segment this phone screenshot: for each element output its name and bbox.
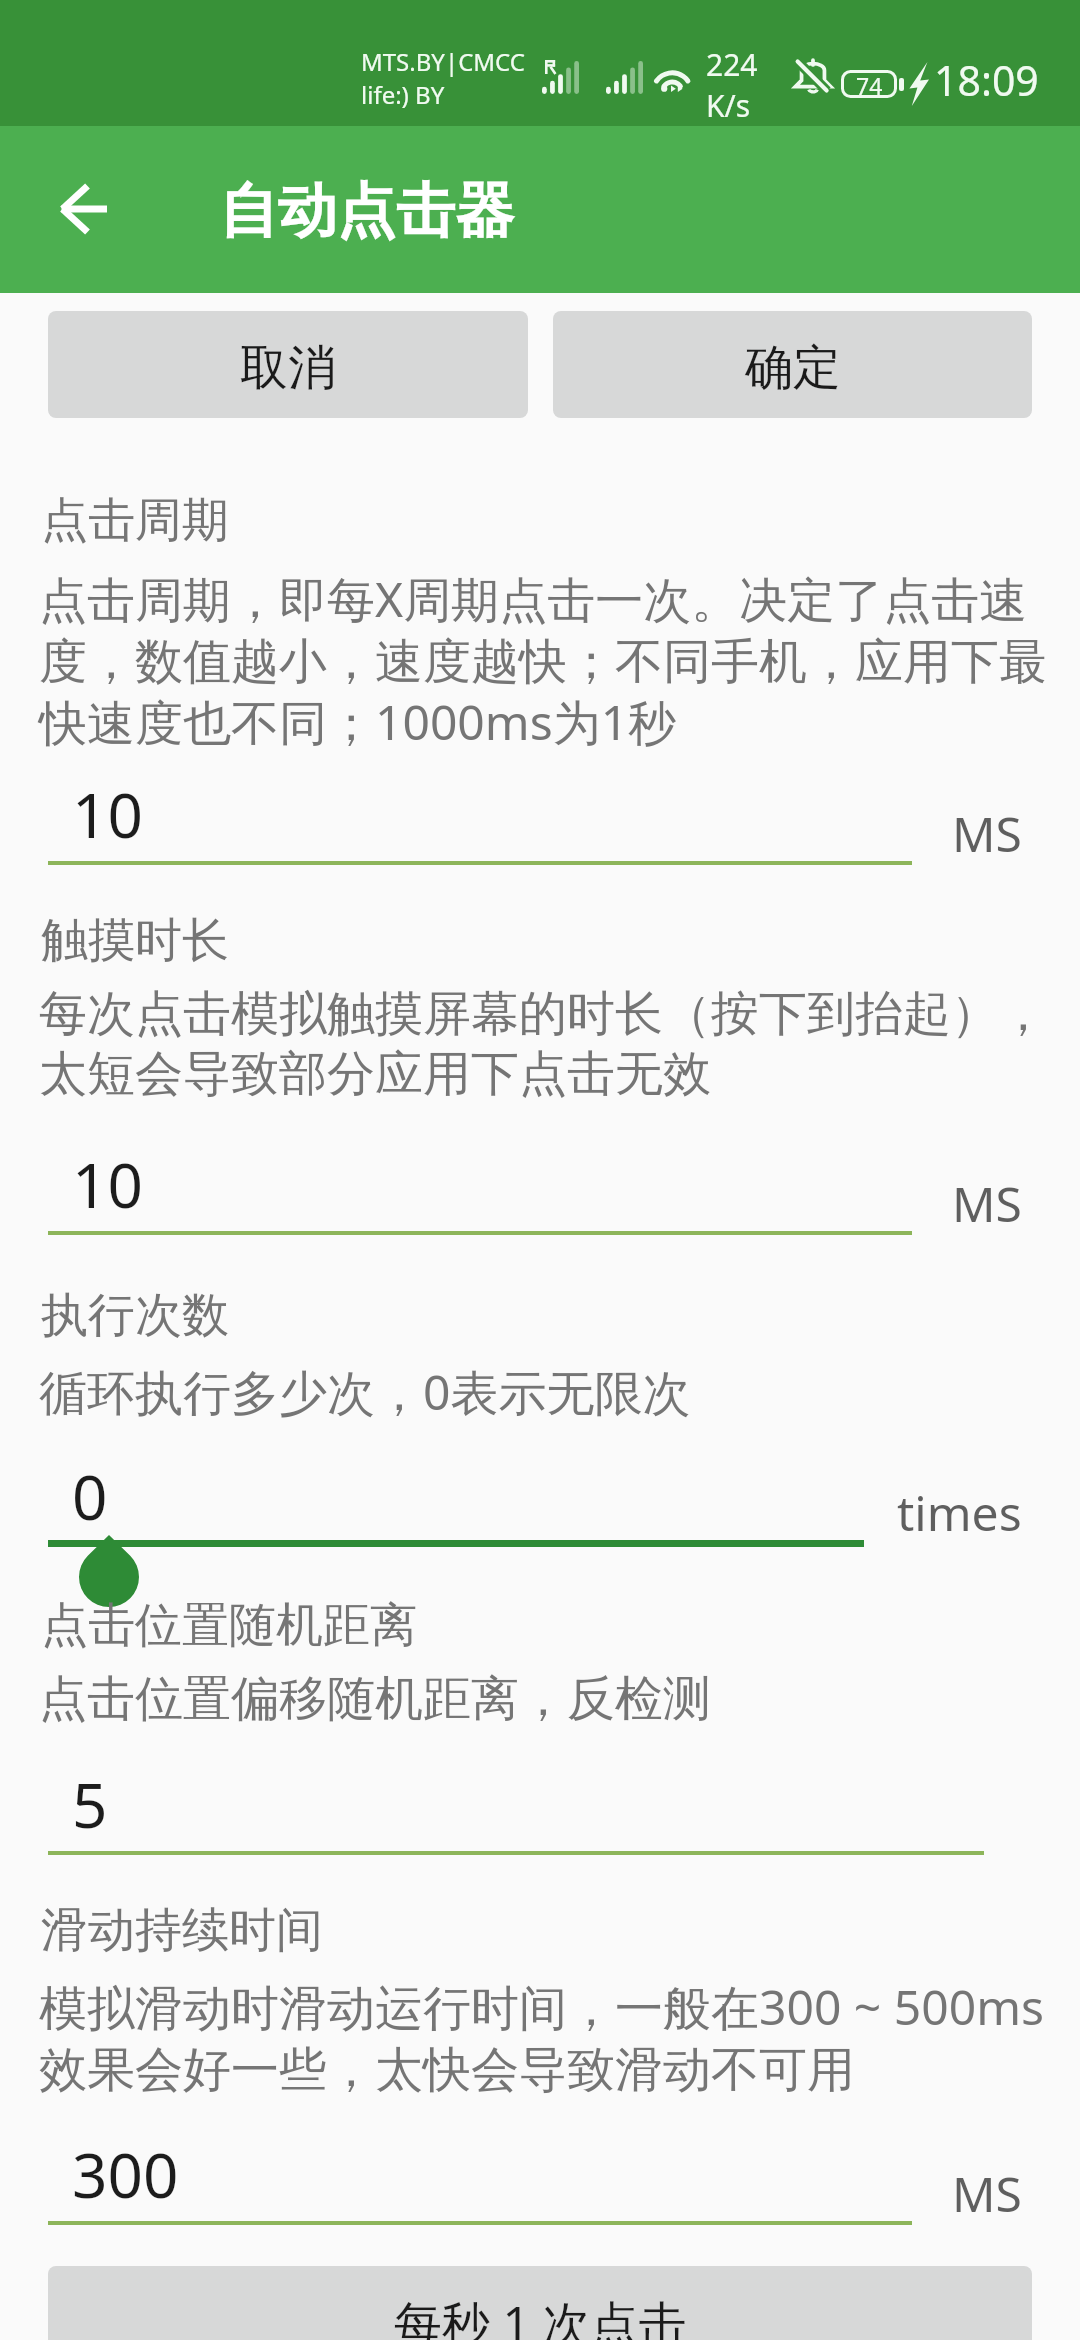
staticText: 点击周期，即每X周期点击一次。决定了点击速 度，数值越小，速度越快；不同手机，应… bbox=[39, 566, 1047, 754]
staticText: 18:09 bbox=[934, 52, 1039, 108]
staticText: 每次点击模拟触摸屏幕的时长（按下到抬起）， 太短会导致部分应用下点击无效 bbox=[39, 984, 1047, 1104]
staticText: times bbox=[897, 1480, 1022, 1545]
staticText: 10 bbox=[72, 772, 143, 856]
staticText: 点击位置随机距离 bbox=[41, 1596, 417, 1655]
staticText: 5 bbox=[72, 1762, 108, 1846]
staticText: 确定 bbox=[745, 338, 841, 398]
staticText: 每秒 1 次点击 bbox=[394, 2290, 687, 2340]
button[interactable]: 10 bbox=[48, 1130, 912, 1235]
button[interactable]: Back bbox=[32, 157, 136, 261]
staticText: 点击位置偏移随机距离，反检测 bbox=[39, 1669, 711, 1729]
button[interactable]: 取消 bbox=[48, 311, 528, 418]
staticText: 模拟滑动时滑动运行时间，一般在300 ~ 500ms 效果会好一些，太快会导致滑… bbox=[39, 1974, 1045, 2100]
button[interactable]: 10 bbox=[48, 760, 912, 865]
staticText: 取消 bbox=[240, 338, 336, 398]
staticText: 10 bbox=[72, 1142, 143, 1226]
staticText: 自动点击器 bbox=[219, 174, 514, 248]
staticText: MS bbox=[952, 2161, 1022, 2226]
staticText: 300 bbox=[72, 2132, 179, 2216]
staticText: 触摸时长 bbox=[41, 911, 229, 970]
staticText: 224 bbox=[706, 44, 758, 85]
staticText: 循环执行多少次，0表示无限次 bbox=[39, 1359, 691, 1425]
staticText: 74 bbox=[856, 70, 883, 98]
staticText: MS bbox=[952, 801, 1022, 866]
staticText: K/s bbox=[706, 85, 751, 126]
staticText: 点击周期 bbox=[41, 491, 229, 550]
staticText: MTS.BY|CMCC bbox=[361, 45, 525, 78]
button[interactable]: 每秒 1 次点击 bbox=[48, 2266, 1032, 2340]
staticText: 滑动持续时间 bbox=[41, 1901, 323, 1960]
staticText: life:) BY bbox=[361, 78, 445, 111]
staticText: MS bbox=[952, 1171, 1022, 1236]
button[interactable]: 300 bbox=[48, 2120, 912, 2225]
button[interactable]: 5 bbox=[48, 1750, 984, 1855]
button[interactable]: 确定 bbox=[553, 311, 1032, 418]
staticText: 执行次数 bbox=[41, 1286, 229, 1345]
button[interactable]: 0 bbox=[48, 1442, 864, 1544]
staticText: 0 bbox=[72, 1454, 108, 1538]
